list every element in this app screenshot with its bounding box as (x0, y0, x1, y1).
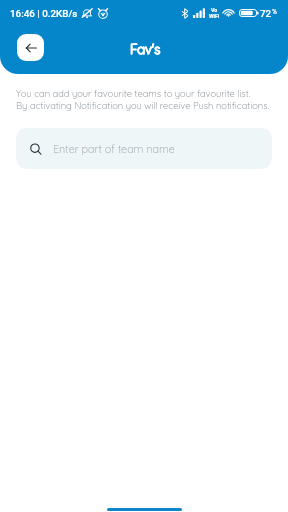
staticText: Enter part of team name (53, 142, 175, 156)
button[interactable]: Back (17, 34, 44, 61)
staticText: 72 (260, 8, 272, 19)
staticText: WiFi (209, 13, 220, 19)
staticText: 16:46 | 0.2KB/s (10, 8, 78, 19)
button[interactable]: Enter part of team name (16, 128, 272, 169)
staticText: Fav's (130, 41, 161, 57)
staticText: You can add your favourite teams to your… (16, 88, 270, 112)
staticText: Fav's (130, 41, 161, 57)
staticText: % (272, 8, 277, 16)
staticText: Vo (211, 7, 218, 13)
